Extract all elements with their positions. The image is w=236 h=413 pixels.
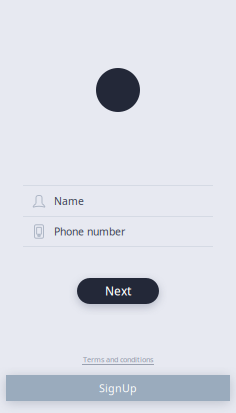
- button[interactable]: SignUp: [6, 375, 230, 401]
- staticText: Phone number: [54, 224, 125, 239]
- button[interactable]: Next: [77, 278, 159, 304]
- button[interactable]: Name: [23, 186, 213, 216]
- staticText: SignUp: [99, 381, 137, 395]
- staticText: Name: [54, 194, 84, 208]
- staticText: Terms and conditions: [83, 355, 153, 364]
- staticText: Next: [105, 283, 131, 299]
- button[interactable]: Terms and conditions: [82, 354, 154, 366]
- button[interactable]: Phone number: [23, 217, 213, 246]
